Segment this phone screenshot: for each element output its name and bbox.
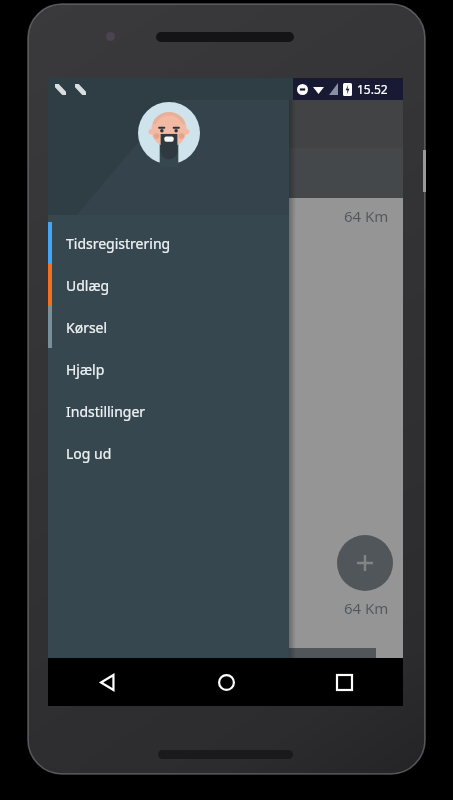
button[interactable]: Recent apps [285,658,403,706]
staticText: Tidsregistrering [66,234,171,253]
button[interactable]: Back [48,658,167,706]
staticText: Kørsel [66,318,108,337]
button[interactable]: Tidsregistrering [48,222,289,264]
button[interactable]: Kørsel [48,306,289,348]
staticText: 64 Km [344,598,389,618]
button[interactable]: Log ud [48,432,289,474]
button[interactable]: Hjælp [48,348,289,390]
staticText: Indstillinger [66,402,146,421]
staticText: Log ud [66,444,112,463]
staticText: 64 Km [344,206,389,226]
button[interactable]: Home [167,658,285,706]
staticText: 15.52 [357,81,388,97]
button[interactable]: Udlæg [48,264,289,306]
button[interactable]: Add [337,535,393,591]
staticText: Hjælp [66,360,105,379]
staticText: Udlæg [66,276,110,295]
button[interactable]: Indstillinger [48,390,289,432]
